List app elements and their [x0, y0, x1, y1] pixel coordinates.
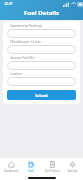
button[interactable]: Our Policies [42, 161, 62, 173]
staticText: Submit [35, 93, 48, 98]
staticText: Fuel Details [24, 9, 59, 17]
button[interactable]: Settings [62, 161, 82, 173]
staticText: Dashboard [4, 169, 18, 173]
staticText: Our Policies [45, 169, 60, 173]
staticText: Filled Amount in Litres [10, 40, 41, 44]
staticText: Settings [67, 169, 78, 173]
staticText: Speedometer Readings [10, 24, 42, 28]
button[interactable]: Submit [7, 90, 76, 100]
staticText: 23:37 [4, 2, 13, 6]
button[interactable]: Fuel [21, 161, 41, 173]
button[interactable] [7, 77, 76, 86]
staticText: Amount Paid (Rs.) [10, 56, 35, 60]
staticText: Location [10, 72, 22, 76]
button[interactable] [7, 61, 76, 70]
button[interactable] [7, 45, 76, 54]
staticText: Fuel [28, 169, 34, 173]
button[interactable] [7, 29, 76, 38]
button[interactable]: Dashboard [1, 161, 21, 173]
